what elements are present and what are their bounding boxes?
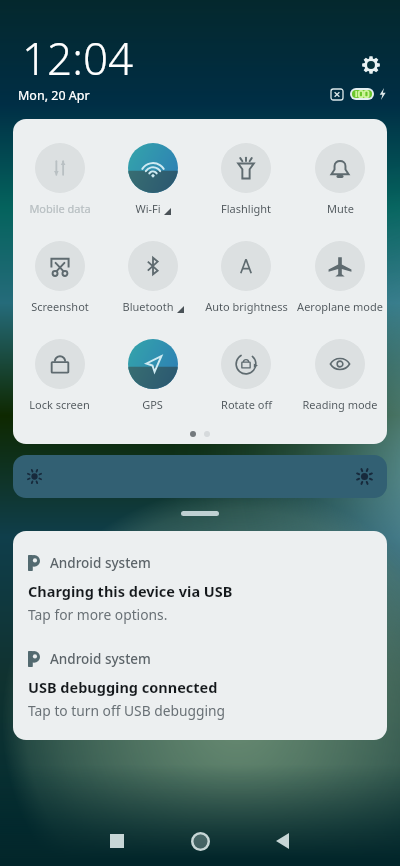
staticText: Tap for more options. [28, 605, 168, 624]
staticText: Bluetooth [122, 299, 174, 314]
staticText: Auto brightness [205, 299, 288, 314]
button[interactable]: Home [176, 816, 224, 866]
staticText: 12:04 [22, 28, 134, 88]
button[interactable]: Mobile data [13, 143, 106, 216]
button[interactable]: Wi-Fi [106, 143, 199, 216]
button[interactable]: Android system [28, 554, 372, 624]
staticText: Lock screen [29, 397, 90, 412]
button[interactable]: Auto brightness [199, 241, 293, 314]
button[interactable]: Back [258, 816, 306, 866]
staticText: Reading mode [302, 397, 378, 412]
button[interactable]: Lock screen [13, 339, 106, 412]
button[interactable]: Reading mode [293, 339, 387, 412]
button[interactable]: GPS [106, 339, 199, 412]
staticText: Rotate off [221, 397, 272, 412]
button[interactable]: Flashlight [199, 143, 293, 216]
staticText: GPS [142, 397, 163, 412]
button[interactable]: Recents [93, 816, 141, 866]
button[interactable]: Mute [293, 143, 387, 216]
staticText: Aeroplane mode [297, 299, 383, 314]
button[interactable]: Settings [353, 47, 389, 83]
button[interactable]: Android system [28, 650, 372, 720]
button[interactable]: Brightness [13, 455, 387, 498]
staticText: Charging this device via USB [28, 581, 233, 601]
button[interactable]: Aeroplane mode [293, 241, 387, 314]
staticText: Mute [327, 201, 354, 216]
staticText: Wi-Fi [135, 201, 161, 216]
staticText: Android system [50, 554, 151, 572]
button[interactable]: Bluetooth [106, 241, 199, 314]
button[interactable]: Screenshot [13, 241, 106, 314]
staticText: Flashlight [221, 201, 271, 216]
button[interactable]: Rotate off [199, 339, 293, 412]
staticText: Mon, 20 Apr [18, 87, 90, 104]
staticText: Screenshot [31, 299, 89, 314]
staticText: Android system [50, 650, 151, 668]
staticText: USB debugging connected [28, 677, 218, 697]
staticText: Tap to turn off USB debugging [28, 701, 226, 720]
staticText: Mobile data [29, 201, 91, 216]
